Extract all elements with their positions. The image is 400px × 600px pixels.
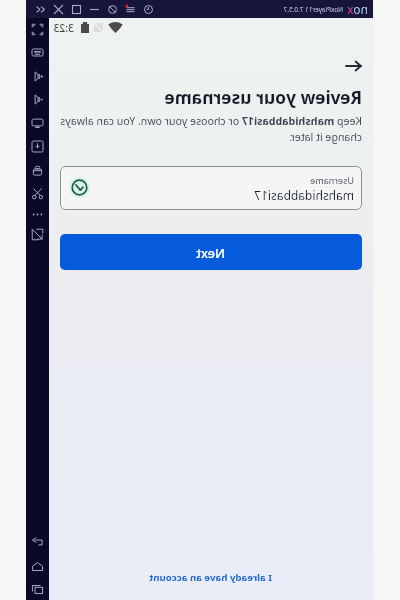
button[interactable]: Maximize (72, 5, 81, 14)
staticText: nox (347, 1, 368, 17)
staticText: NoxPlayer11 7.0.5.7 (283, 5, 343, 14)
button[interactable]: More (32, 209, 43, 220)
button[interactable]: Screen (32, 118, 43, 129)
button[interactable]: Keyboard (32, 47, 43, 58)
button[interactable]: Volume up (32, 71, 43, 82)
staticText: 3:23 (53, 21, 74, 35)
staticText: Keep mahshidabbasi17 or choose your own.… (60, 114, 362, 144)
button[interactable]: Collapse (36, 5, 45, 14)
button[interactable]: Next (60, 234, 362, 270)
button[interactable]: Fullscreen (32, 24, 43, 35)
button[interactable]: Resize (32, 229, 43, 240)
staticText: Review your username (164, 85, 362, 109)
button[interactable]: Menu (126, 5, 135, 14)
button[interactable]: Recents (32, 584, 43, 595)
button[interactable]: Install APK (32, 141, 43, 152)
staticText: Username (310, 174, 354, 186)
button[interactable]: Minimize (90, 5, 99, 14)
button[interactable]: Close (54, 5, 63, 14)
staticText: I already have an account (149, 571, 272, 584)
button[interactable]: Settings (108, 5, 117, 14)
button[interactable]: I already have an account (49, 558, 373, 596)
button[interactable]: Screenshot (32, 188, 43, 199)
button[interactable]: Shake (32, 165, 43, 176)
button[interactable]: History (144, 5, 153, 14)
button[interactable]: Username (60, 166, 362, 210)
staticText: Next (196, 244, 225, 261)
button[interactable]: Back (339, 51, 369, 81)
staticText: mahshidabbasi17 (254, 187, 354, 203)
button[interactable]: Home (32, 561, 43, 572)
button[interactable]: Volume down (32, 94, 43, 105)
button[interactable]: Back (32, 537, 43, 548)
